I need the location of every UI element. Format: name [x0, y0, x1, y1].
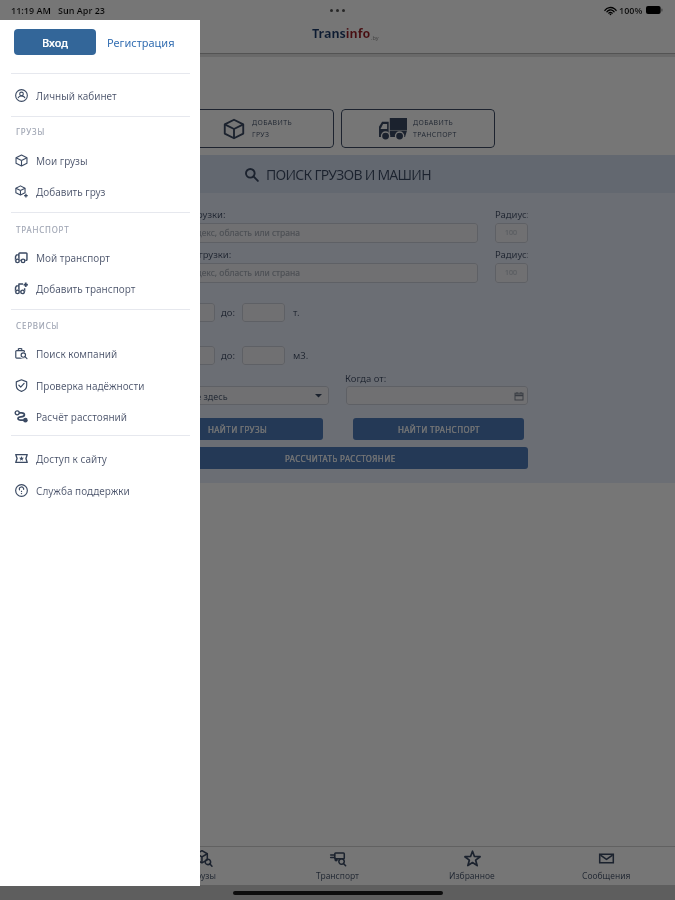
- staticText: Город, индекс, область или страна: [157, 227, 300, 239]
- staticText: РАССЧИТАТЬ РАССТОЯНИЕ: [285, 453, 396, 464]
- button[interactable]: Город, индекс, область или страна: [152, 223, 478, 243]
- staticText: .by: [371, 34, 379, 41]
- staticText: Когда от:: [345, 372, 387, 384]
- button[interactable]: Мой транспорт: [0, 242, 200, 273]
- staticText: Город, индекс, область или страна: [157, 267, 300, 279]
- staticText: НАЙТИ ТРАНСПОРТ: [398, 424, 480, 435]
- button[interactable]: ПОИСК ГРУЗОВ И МАШИН: [0, 155, 675, 193]
- button[interactable]: НАЙТИ ТРАНСПОРТ: [353, 418, 524, 440]
- staticText: Доступ к сайту: [36, 452, 107, 466]
- staticText: Добавить груз: [36, 185, 106, 199]
- button[interactable]: ДОБАВИТЬ: [341, 109, 495, 148]
- staticText: Мой транспорт: [36, 251, 110, 265]
- staticText: Радиус:: [495, 248, 528, 260]
- staticText: Добавить транспорт: [36, 282, 136, 296]
- staticText: Место загрузки:: [152, 208, 226, 220]
- button[interactable]: [346, 386, 528, 405]
- button[interactable]: Мои грузы: [0, 145, 200, 176]
- button[interactable]: Транспорт: [271, 847, 405, 885]
- staticText: ПОИСК ГРУЗОВ И МАШИН: [266, 165, 431, 184]
- button[interactable]: Доступ к сайту: [0, 443, 200, 474]
- button[interactable]: Личный кабинет: [0, 80, 200, 111]
- staticText: Служба поддержки: [36, 484, 130, 498]
- staticText: 11:19 AM: [11, 4, 51, 16]
- staticText: 100: [505, 228, 518, 238]
- staticText: Транспорт: [316, 870, 360, 882]
- button[interactable]: 100: [495, 263, 528, 283]
- button[interactable]: Поиск компаний: [0, 338, 200, 369]
- staticText: НАЙТИ ГРУЗЫ: [208, 424, 268, 435]
- staticText: Вес от:: [152, 306, 171, 319]
- staticText: СЕРВИСЫ: [16, 320, 60, 331]
- staticText: Расчёт расстояний: [36, 410, 127, 424]
- staticText: 100: [505, 268, 518, 278]
- staticText: 100%: [619, 4, 643, 16]
- staticText: Грузы: [192, 870, 216, 882]
- staticText: Сообщения: [582, 870, 631, 882]
- button[interactable]: Вход: [14, 29, 96, 55]
- button[interactable]: НАЙТИ ГРУЗЫ: [152, 418, 323, 440]
- button[interactable]: Регистрация: [96, 29, 186, 55]
- button[interactable]: РАССЧИТАТЬ РАССТОЯНИЕ: [152, 447, 528, 469]
- staticText: Поиск компаний: [36, 347, 118, 361]
- button[interactable]: ДОБАВИТЬ: [180, 109, 334, 148]
- staticText: до:: [221, 306, 235, 319]
- staticText: до:: [221, 349, 235, 362]
- staticText: Место разгрузки:: [152, 248, 232, 260]
- staticText: ДОБАВИТЬ: [413, 118, 453, 128]
- staticText: Вход: [42, 35, 68, 50]
- button[interactable]: Избранное: [405, 847, 539, 885]
- button[interactable]: Служба поддержки: [0, 475, 200, 506]
- staticText: Transinfo: [312, 25, 371, 42]
- staticText: ДОБАВИТЬ: [252, 118, 292, 128]
- staticText: Радиус:: [495, 208, 528, 220]
- staticText: м3.: [293, 349, 309, 362]
- button[interactable]: Добавить транспорт: [0, 273, 200, 304]
- staticText: Проверка надёжности: [36, 379, 145, 393]
- staticText: ТРАНСПОРТ: [16, 224, 70, 235]
- button[interactable]: Добавить груз: [0, 176, 200, 207]
- button[interactable]: 100: [495, 223, 528, 243]
- staticText: Личный кабинет: [36, 89, 117, 103]
- button[interactable]: Грузы: [137, 847, 271, 885]
- button[interactable]: Проверка надёжности: [0, 370, 200, 401]
- staticText: ГРУЗЫ: [16, 126, 46, 137]
- button[interactable]: Город, индекс, область или страна: [152, 263, 478, 283]
- button[interactable]: Выберите здесь: [152, 386, 329, 405]
- button[interactable]: Сообщения: [539, 847, 673, 885]
- staticText: ТРАНСПОРТ: [413, 130, 457, 140]
- button[interactable]: Расчёт расстояний: [0, 401, 200, 432]
- staticText: Регистрация: [107, 35, 175, 50]
- staticText: Выберите здесь: [158, 390, 228, 402]
- staticText: Избранное: [449, 870, 495, 882]
- staticText: ГРУЗ: [252, 130, 270, 140]
- staticText: Мои грузы: [36, 154, 88, 168]
- staticText: Sun Apr 23: [58, 4, 105, 16]
- staticText: т.: [293, 306, 300, 319]
